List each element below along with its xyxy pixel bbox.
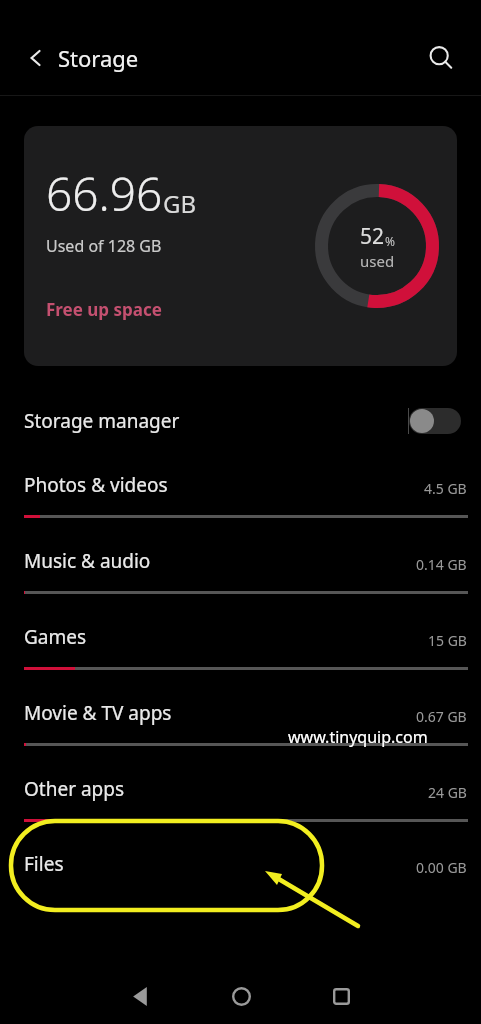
staticText: 4.5 GB bbox=[424, 479, 467, 498]
button[interactable]: Music & audio bbox=[0, 546, 481, 594]
staticText: 24 GB bbox=[428, 783, 467, 802]
button[interactable]: Free up space bbox=[46, 298, 162, 321]
button[interactable]: 66.96 bbox=[24, 126, 457, 366]
button[interactable]: Files bbox=[0, 849, 481, 889]
staticText: 0.00 GB bbox=[416, 858, 467, 877]
button[interactable]: Back bbox=[14, 36, 58, 80]
button[interactable]: Home bbox=[210, 968, 272, 1024]
staticText: 0.67 GB bbox=[416, 707, 467, 726]
button[interactable]: Search bbox=[419, 36, 463, 80]
button[interactable]: Movie & TV apps bbox=[0, 698, 481, 746]
staticText: 0.14 GB bbox=[416, 555, 467, 574]
button[interactable]: Recents bbox=[310, 968, 372, 1024]
staticText: Games bbox=[24, 624, 87, 650]
staticText: 66.96 bbox=[46, 162, 163, 225]
staticText: % bbox=[385, 233, 395, 249]
staticText: Movie & TV apps bbox=[24, 700, 172, 726]
staticText: 15 GB bbox=[428, 631, 467, 650]
staticText: Photos & videos bbox=[24, 472, 168, 498]
button[interactable]: Storage manager bbox=[0, 398, 481, 444]
staticText: Used of 128 GB bbox=[46, 235, 162, 257]
staticText: Music & audio bbox=[24, 548, 151, 574]
staticText: Free up space bbox=[46, 298, 162, 321]
button[interactable]: Storage manager toggle bbox=[409, 407, 461, 435]
button[interactable]: Back bbox=[110, 968, 172, 1024]
staticText: Storage manager bbox=[24, 408, 180, 434]
staticText: www.tinyquip.com bbox=[288, 726, 428, 748]
staticText: Storage bbox=[58, 43, 139, 73]
staticText: Files bbox=[24, 851, 64, 877]
button[interactable]: Other apps bbox=[0, 774, 481, 822]
button[interactable]: Games bbox=[0, 622, 481, 670]
staticText: GB bbox=[163, 187, 197, 220]
staticText: used bbox=[360, 251, 395, 271]
staticText: Other apps bbox=[24, 776, 125, 802]
staticText: 52 bbox=[360, 222, 385, 251]
button[interactable]: Photos & videos bbox=[0, 470, 481, 518]
